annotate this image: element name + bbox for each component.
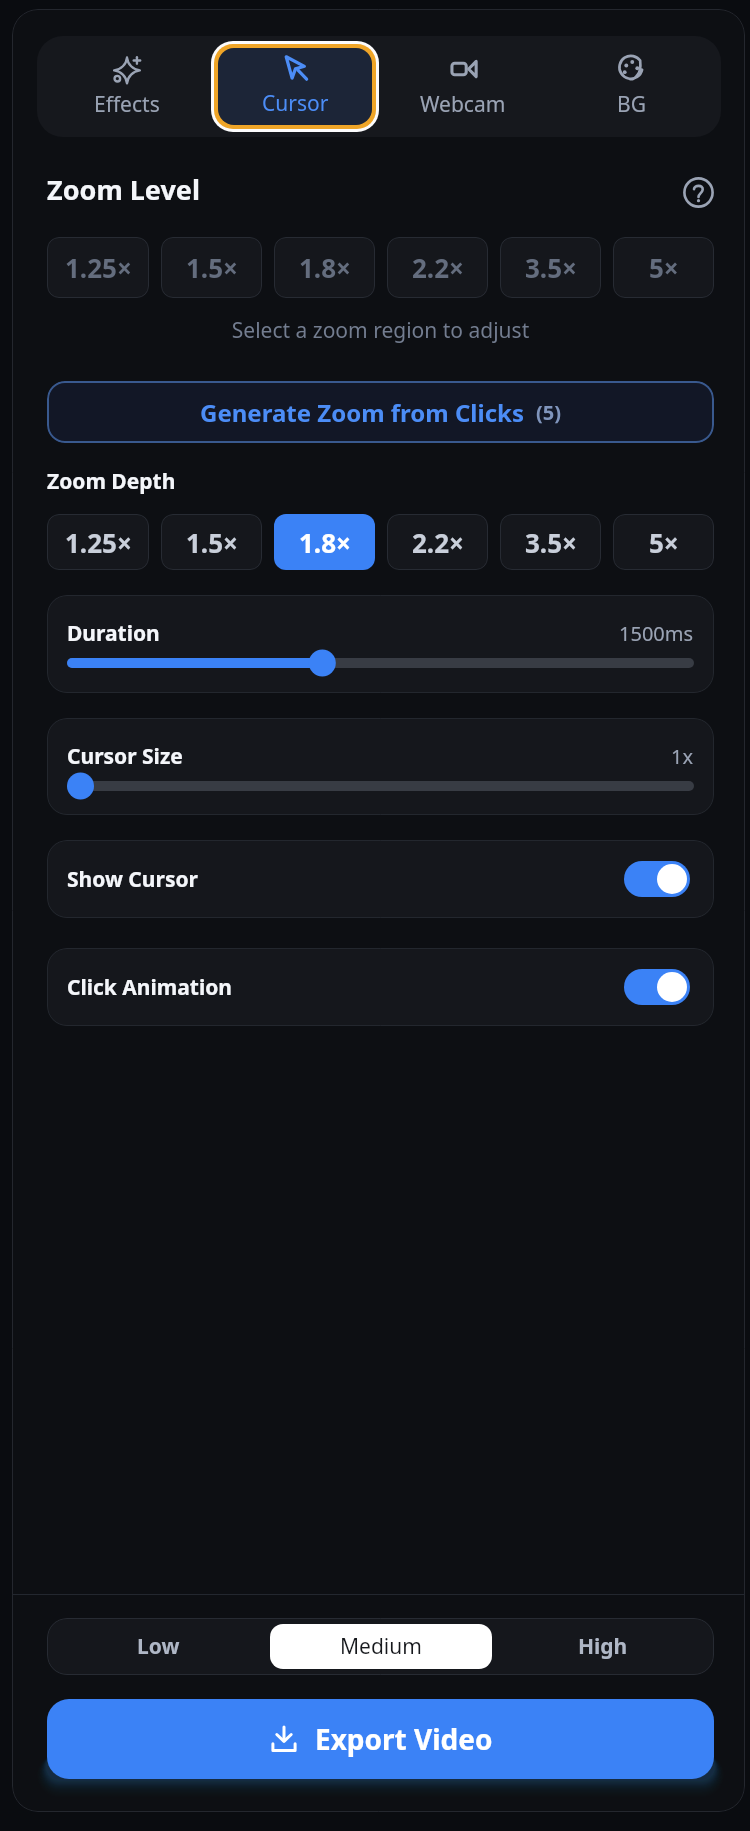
button[interactable]: 1.8×	[274, 237, 375, 298]
staticText: Zoom Depth	[47, 467, 176, 496]
staticText: 3.5×	[525, 525, 577, 560]
button[interactable]: 5×	[613, 514, 714, 570]
button[interactable]: 1.25×	[47, 514, 149, 570]
staticText: Cursor Size	[67, 742, 183, 771]
staticText: 1.25×	[65, 250, 132, 285]
button[interactable]: 3.5×	[500, 237, 601, 298]
staticText: 2.2×	[412, 525, 464, 560]
button[interactable]: Export Video	[47, 1699, 714, 1779]
staticText: 1500ms	[619, 620, 694, 647]
staticText: Click Animation	[67, 973, 233, 1002]
button[interactable]: 2.2×	[387, 514, 488, 570]
staticText: Show Cursor	[67, 865, 198, 894]
button[interactable]: Effects	[43, 36, 211, 137]
button[interactable]: 1.25×	[47, 237, 149, 298]
button[interactable]: Medium	[270, 1624, 492, 1669]
staticText: 5×	[649, 525, 679, 560]
button[interactable]: 1.5×	[161, 514, 262, 570]
staticText: 1x	[671, 743, 694, 770]
staticText: Cursor	[262, 89, 329, 118]
staticText: Generate Zoom from Clicks	[200, 396, 524, 429]
button[interactable]: Help	[681, 175, 715, 209]
staticText: 1.25×	[65, 525, 132, 560]
staticText: Export Video	[315, 1720, 493, 1758]
staticText: 1.5×	[186, 250, 238, 285]
staticText: BG	[617, 90, 646, 119]
button[interactable]: BG	[547, 36, 715, 137]
button[interactable]: High	[492, 1624, 714, 1669]
button[interactable]: 3.5×	[500, 514, 601, 570]
staticText: Webcam	[420, 90, 506, 119]
staticText: Medium	[340, 1632, 422, 1661]
staticText: Duration	[67, 619, 160, 648]
staticText: 1.8×	[299, 250, 351, 285]
button[interactable]: Cursor	[211, 36, 379, 137]
staticText: 3.5×	[525, 250, 577, 285]
button[interactable]: 1.8×	[274, 514, 375, 570]
button[interactable]: Generate Zoom from Clicks	[47, 381, 714, 443]
staticText: (5)	[536, 399, 561, 426]
staticText: Zoom Level	[47, 171, 200, 205]
button[interactable]: Click Animation	[47, 948, 714, 1026]
staticText: 2.2×	[412, 250, 464, 285]
button[interactable]: Webcam	[379, 36, 547, 137]
staticText: High	[578, 1632, 628, 1661]
button[interactable]: Duration	[47, 595, 714, 693]
button[interactable]: 1.5×	[161, 237, 262, 298]
staticText: 5×	[649, 250, 679, 285]
button[interactable]: Show Cursor	[47, 840, 714, 918]
staticText: 1.5×	[186, 525, 238, 560]
button[interactable]: 2.2×	[387, 237, 488, 298]
button[interactable]: 5×	[613, 237, 714, 298]
staticText: Low	[137, 1632, 180, 1661]
button[interactable]: Low	[47, 1624, 270, 1669]
staticText: 1.8×	[299, 525, 351, 560]
button[interactable]: Cursor Size	[47, 718, 714, 815]
staticText: Select a zoom region to adjust	[47, 316, 714, 345]
staticText: Effects	[94, 90, 160, 119]
